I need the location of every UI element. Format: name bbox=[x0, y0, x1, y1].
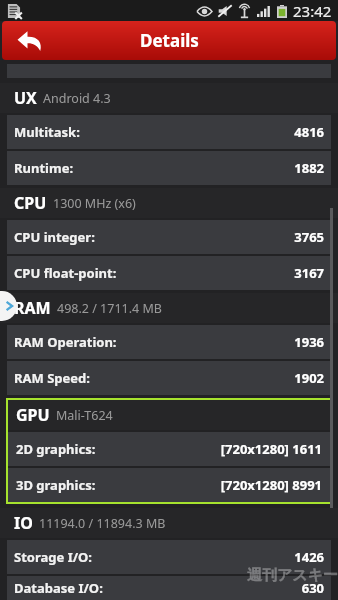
staticText: 3167 bbox=[294, 264, 324, 282]
staticText: 23:42 bbox=[293, 1, 332, 21]
button[interactable]: Database I/O: bbox=[7, 576, 331, 600]
staticText: Runtime: bbox=[14, 159, 74, 177]
staticText: CPU integer: bbox=[14, 228, 95, 246]
staticText: 4816 bbox=[294, 123, 324, 141]
staticText: 1300 MHz (x6) bbox=[53, 195, 136, 212]
staticText: 1882 bbox=[294, 159, 324, 177]
staticText: 630 bbox=[301, 579, 324, 597]
staticText: Database I/O: bbox=[14, 579, 103, 597]
button[interactable]: Storage I/O: bbox=[7, 540, 331, 574]
staticText: 3765 bbox=[294, 228, 324, 246]
staticText: 1902 bbox=[294, 369, 324, 387]
staticText: [720x1280] 1611 bbox=[220, 440, 322, 458]
button[interactable]: Open navigation drawer bbox=[0, 291, 17, 321]
staticText: Android 4.3 bbox=[43, 90, 111, 107]
staticText: Storage I/O: bbox=[14, 548, 93, 566]
staticText: CPU bbox=[14, 192, 47, 214]
staticText: 3D graphics: bbox=[16, 476, 96, 494]
staticText: GPU bbox=[16, 404, 50, 426]
button[interactable]: RAM Operation: bbox=[7, 325, 331, 359]
staticText: 1936 bbox=[294, 333, 324, 351]
button[interactable]: CPU float-point: bbox=[7, 256, 331, 290]
staticText: IO bbox=[14, 512, 33, 534]
staticText: Multitask: bbox=[14, 123, 80, 141]
staticText: CPU float-point: bbox=[14, 264, 117, 282]
staticText: 1426 bbox=[294, 548, 324, 566]
button[interactable]: Back bbox=[2, 21, 56, 60]
staticText: Details bbox=[140, 29, 199, 52]
staticText: RAM bbox=[14, 297, 51, 319]
staticText: 週刊アスキー bbox=[247, 566, 338, 585]
staticText: Mali-T624 bbox=[56, 407, 113, 424]
staticText: UX bbox=[14, 87, 37, 109]
button[interactable]: 2D graphics: bbox=[8, 432, 330, 466]
staticText: [720x1280] 8991 bbox=[220, 476, 322, 494]
button[interactable]: Multitask: bbox=[7, 115, 331, 149]
staticText: RAM Speed: bbox=[14, 369, 90, 387]
staticText: RAM Operation: bbox=[14, 333, 117, 351]
staticText: 498.2 / 1711.4 MB bbox=[57, 300, 162, 317]
staticText: 2D graphics: bbox=[16, 440, 96, 458]
button[interactable]: RAM Speed: bbox=[7, 361, 331, 395]
button[interactable]: Runtime: bbox=[7, 151, 331, 185]
button[interactable]: 3D graphics: bbox=[8, 468, 330, 502]
staticText: 11194.0 / 11894.3 MB bbox=[39, 515, 166, 532]
button[interactable]: CPU integer: bbox=[7, 220, 331, 254]
